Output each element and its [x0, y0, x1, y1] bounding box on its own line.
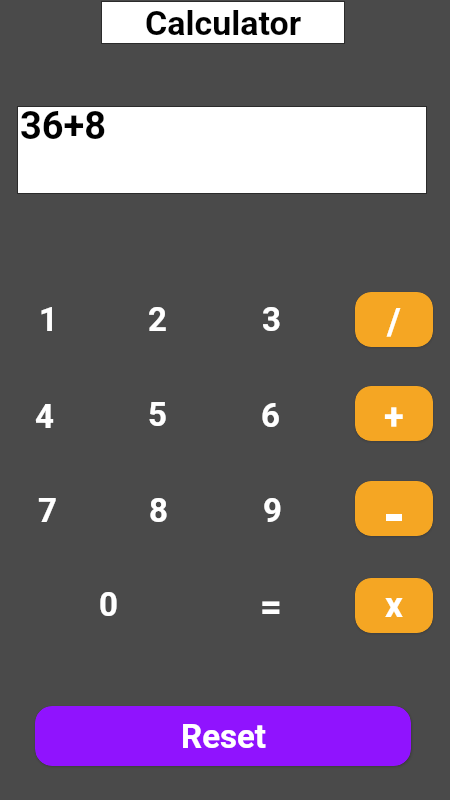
- button[interactable]: 2: [107, 277, 207, 362]
- button[interactable]: 1: [0, 277, 98, 362]
- button[interactable]: 6: [220, 373, 320, 458]
- button[interactable]: 4: [0, 374, 94, 459]
- staticText: /: [387, 300, 401, 343]
- staticText: 4: [35, 397, 54, 436]
- button[interactable]: 9: [222, 468, 322, 553]
- staticText: 6: [261, 396, 280, 435]
- button[interactable]: Multiply: [355, 578, 433, 633]
- button[interactable]: 3: [221, 277, 321, 362]
- staticText: 2: [148, 300, 167, 339]
- staticText: 9: [263, 491, 282, 530]
- staticText: 3: [262, 300, 281, 339]
- button[interactable]: Reset: [35, 706, 411, 766]
- button[interactable]: Add: [355, 386, 433, 441]
- staticText: 5: [148, 395, 167, 434]
- button[interactable]: =: [221, 565, 321, 650]
- button[interactable]: Divide: [355, 292, 433, 347]
- button[interactable]: 0: [58, 562, 158, 647]
- staticText: Calculator: [145, 3, 302, 43]
- staticText: 1: [39, 300, 58, 339]
- staticText: 0: [99, 585, 118, 624]
- staticText: 8: [149, 491, 168, 530]
- button[interactable]: 36+8: [18, 107, 426, 193]
- button[interactable]: 5: [107, 372, 207, 457]
- staticText: =: [260, 585, 282, 630]
- staticText: x: [385, 585, 403, 626]
- button[interactable]: Subtract: [355, 481, 433, 536]
- staticText: Reset: [181, 717, 266, 756]
- staticText: +: [384, 396, 404, 438]
- staticText: 7: [38, 491, 57, 530]
- staticText: 36+8: [20, 104, 107, 149]
- button[interactable]: 7: [0, 468, 97, 553]
- button[interactable]: 8: [108, 468, 208, 553]
